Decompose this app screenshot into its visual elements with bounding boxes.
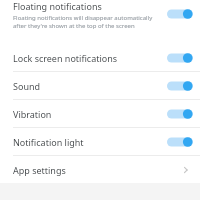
staticText: App settings bbox=[13, 164, 179, 176]
button[interactable]: Vibration toggle bbox=[167, 106, 193, 122]
button[interactable]: Sound bbox=[0, 72, 200, 99]
staticText: Notification light bbox=[13, 136, 167, 148]
button[interactable]: Notification light toggle bbox=[167, 134, 193, 150]
button[interactable]: Lock screen notifications bbox=[0, 45, 200, 71]
button[interactable]: Lock screen notifications toggle bbox=[167, 50, 193, 66]
button[interactable]: App settings bbox=[0, 156, 200, 183]
staticText: Vibration bbox=[13, 108, 167, 120]
button[interactable]: Notification light bbox=[0, 128, 200, 155]
staticText: Lock screen notifications bbox=[13, 52, 167, 64]
button[interactable]: Vibration bbox=[0, 100, 200, 127]
staticText: Sound bbox=[13, 80, 167, 92]
button[interactable]: Floating notifications toggle bbox=[167, 6, 193, 22]
button[interactable]: Sound toggle bbox=[167, 78, 193, 94]
staticText: Floating notifications bbox=[13, 0, 102, 12]
button[interactable]: Floating notifications bbox=[0, 0, 200, 45]
other: Open app settings bbox=[179, 164, 191, 176]
staticText: Floating notifications will disappear au… bbox=[13, 14, 161, 30]
